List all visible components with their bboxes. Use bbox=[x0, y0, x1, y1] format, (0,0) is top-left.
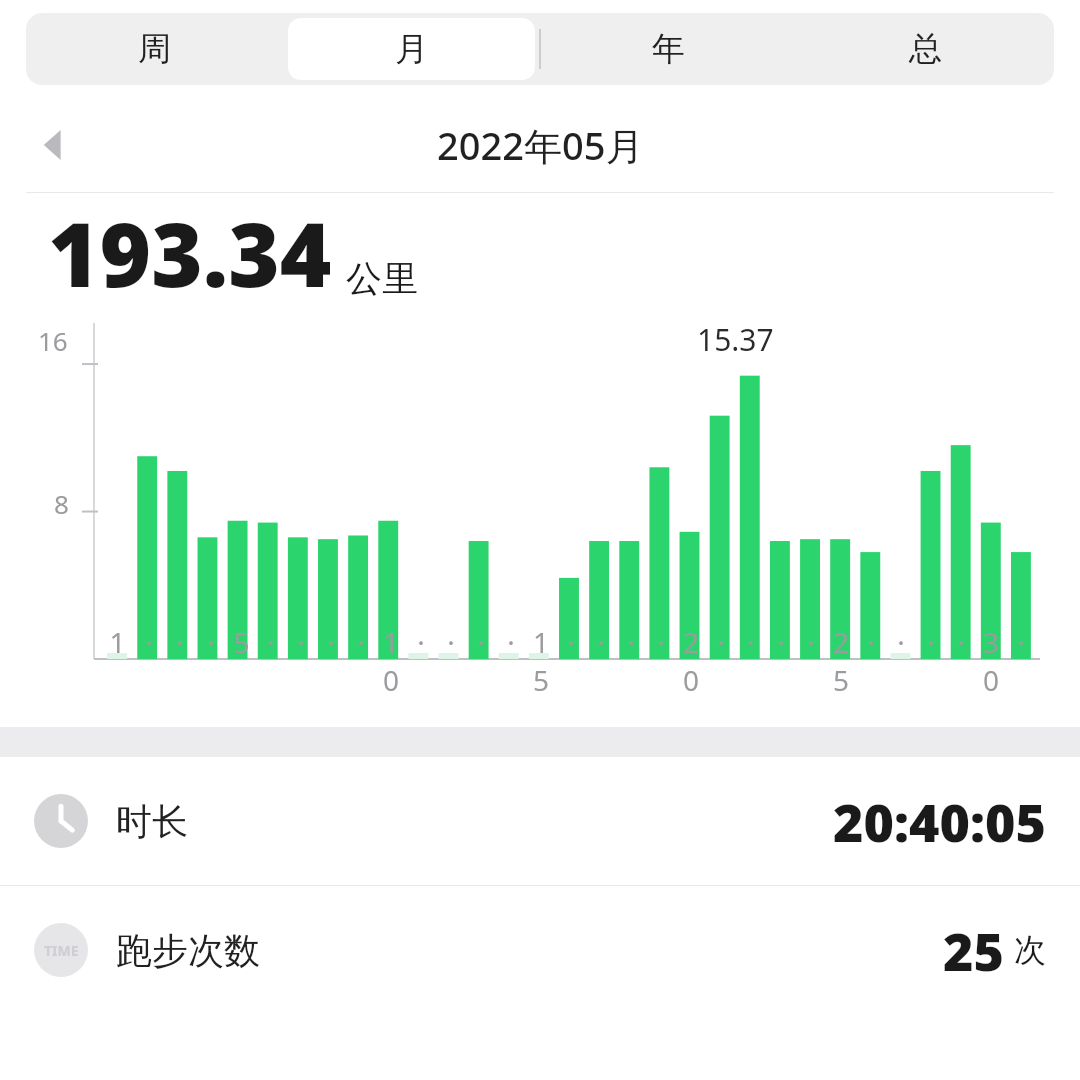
staticText: 次 bbox=[1014, 930, 1046, 970]
staticText: 1 bbox=[109, 623, 126, 661]
staticText: · bbox=[145, 623, 153, 661]
staticText: 年 bbox=[652, 28, 685, 70]
button[interactable]: 月 bbox=[288, 18, 535, 80]
staticText: 15.37 bbox=[697, 319, 774, 360]
staticText: 跑步次数 bbox=[116, 928, 260, 973]
staticText: 2022年05月 bbox=[437, 119, 644, 171]
staticText: 16 bbox=[38, 323, 68, 358]
button[interactable]: Previous month bbox=[26, 117, 82, 173]
button[interactable]: 年 bbox=[545, 18, 792, 80]
staticText: · bbox=[957, 623, 965, 661]
staticText: · bbox=[597, 623, 605, 661]
staticText: · bbox=[927, 623, 935, 661]
staticText: · bbox=[267, 623, 275, 661]
staticText: · bbox=[176, 623, 184, 661]
staticText: 5 bbox=[233, 623, 250, 661]
staticText: 8 bbox=[54, 486, 69, 521]
staticText: · bbox=[867, 623, 875, 661]
staticText: 公里 bbox=[346, 256, 418, 301]
button[interactable]: 总 bbox=[802, 18, 1049, 80]
staticText: · bbox=[567, 623, 575, 661]
staticText: 周 bbox=[138, 28, 171, 70]
staticText: · bbox=[507, 623, 515, 661]
staticText: 10 bbox=[376, 623, 406, 699]
staticText: · bbox=[477, 623, 485, 661]
staticText: · bbox=[327, 623, 335, 661]
staticText: 时长 bbox=[116, 799, 188, 844]
staticText: 25 bbox=[943, 915, 1004, 986]
staticText: · bbox=[897, 623, 905, 661]
staticText: · bbox=[717, 623, 725, 661]
staticText: 193.34 bbox=[48, 193, 332, 311]
staticText: 20 bbox=[676, 623, 706, 699]
button[interactable]: 时长 bbox=[0, 757, 1080, 885]
staticText: · bbox=[207, 623, 215, 661]
staticText: · bbox=[807, 623, 815, 661]
staticText: · bbox=[417, 623, 425, 661]
staticText: TIME bbox=[44, 941, 79, 960]
staticText: · bbox=[627, 623, 635, 661]
staticText: · bbox=[1017, 623, 1025, 661]
staticText: 25 bbox=[826, 623, 856, 699]
staticText: 15 bbox=[526, 623, 556, 699]
staticText: · bbox=[297, 623, 305, 661]
button[interactable]: TIME bbox=[0, 886, 1080, 1014]
staticText: 30 bbox=[976, 623, 1006, 699]
staticText: 总 bbox=[909, 28, 942, 70]
button[interactable]: 周 bbox=[31, 18, 278, 80]
staticText: · bbox=[357, 623, 365, 661]
staticText: · bbox=[777, 623, 785, 661]
staticText: · bbox=[447, 623, 455, 661]
staticText: 20:40:05 bbox=[833, 786, 1046, 857]
staticText: · bbox=[657, 623, 665, 661]
staticText: 月 bbox=[395, 28, 428, 70]
staticText: · bbox=[747, 623, 755, 661]
